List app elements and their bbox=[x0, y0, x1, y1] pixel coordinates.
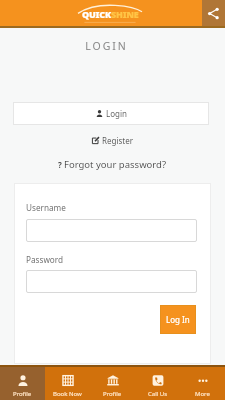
staticText: Profile bbox=[103, 390, 122, 398]
button[interactable]: Register bbox=[0, 134, 225, 146]
staticText: LOGIN bbox=[0, 39, 219, 53]
button[interactable]: Book Now bbox=[45, 367, 90, 400]
staticText: Register bbox=[102, 135, 134, 146]
staticText: Forgot your password? bbox=[64, 158, 167, 170]
button[interactable]: ? bbox=[0, 158, 225, 170]
button[interactable]: Login bbox=[13, 102, 209, 125]
staticText: ? bbox=[58, 159, 62, 170]
button[interactable]: Log In bbox=[160, 305, 196, 334]
staticText: Username bbox=[26, 202, 66, 213]
button[interactable]: Profile bbox=[90, 367, 135, 400]
staticText: QUICK bbox=[82, 8, 111, 20]
staticText: SHINE bbox=[111, 8, 139, 20]
staticText: More bbox=[195, 390, 210, 398]
staticText: Profile bbox=[13, 390, 32, 398]
button[interactable]: Share bbox=[202, 0, 225, 26]
staticText: Log In bbox=[166, 314, 190, 325]
staticText: Book Now bbox=[53, 390, 82, 398]
button[interactable]: More bbox=[180, 367, 225, 400]
staticText: Login bbox=[106, 108, 127, 119]
staticText: Call Us bbox=[148, 390, 168, 398]
button[interactable]: Profile bbox=[0, 367, 45, 400]
staticText: Password bbox=[26, 254, 64, 265]
button[interactable]: Call Us bbox=[135, 367, 180, 400]
